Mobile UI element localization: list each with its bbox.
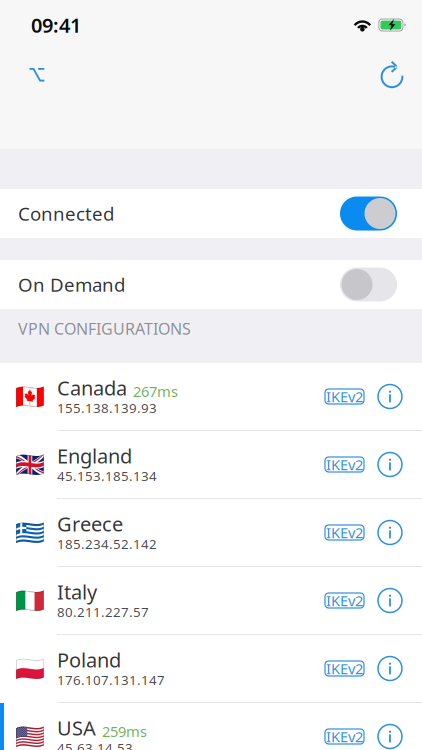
- staticText: 45.63.14.53: [57, 739, 133, 750]
- staticText: 09:41: [31, 12, 81, 38]
- staticText: 80.211.227.57: [57, 603, 149, 621]
- button[interactable]: Options: [15, 53, 59, 97]
- staticText: 155.138.139.93: [57, 399, 157, 417]
- staticText: Poland: [57, 646, 121, 673]
- staticText: IKEv2: [326, 387, 363, 406]
- staticText: 🇨🇦: [15, 383, 45, 410]
- staticText: IKEv2: [326, 455, 363, 474]
- staticText: 🇵🇱: [15, 655, 45, 682]
- staticText: 267ms: [133, 381, 178, 401]
- staticText: Greece: [57, 510, 123, 537]
- staticText: USA: [57, 714, 96, 741]
- staticText: 185.234.52.142: [57, 535, 157, 553]
- staticText: 🇬🇧: [15, 451, 45, 478]
- staticText: 45.153.185.134: [57, 467, 157, 485]
- staticText: On Demand: [18, 272, 125, 297]
- button[interactable]: 🇨🇦: [0, 363, 422, 430]
- button[interactable]: 🇬🇧: [0, 431, 422, 498]
- staticText: 176.107.131.147: [57, 671, 165, 689]
- staticText: IKEv2: [326, 523, 363, 542]
- button[interactable]: 🇺🇸: [0, 703, 422, 750]
- button[interactable]: Connected: [0, 189, 422, 238]
- button[interactable]: 🇵🇱: [0, 635, 422, 702]
- staticText: England: [57, 442, 132, 469]
- staticText: 🇺🇸: [15, 723, 45, 750]
- staticText: 259ms: [102, 721, 147, 741]
- staticText: IKEv2: [326, 591, 363, 610]
- staticText: IKEv2: [326, 727, 363, 746]
- button[interactable]: On Demand: [0, 260, 422, 309]
- staticText: Italy: [57, 578, 97, 605]
- staticText: 🇬🇷: [15, 519, 45, 546]
- staticText: Canada: [57, 374, 127, 401]
- button[interactable]: Refresh: [370, 53, 414, 97]
- staticText: Connected: [18, 201, 114, 226]
- button[interactable]: 🇬🇷: [0, 499, 422, 566]
- button[interactable]: 🇮🇹: [0, 567, 422, 634]
- staticText: VPN CONFIGURATIONS: [18, 318, 191, 339]
- staticText: 🇮🇹: [15, 587, 45, 614]
- staticText: IKEv2: [326, 659, 363, 678]
